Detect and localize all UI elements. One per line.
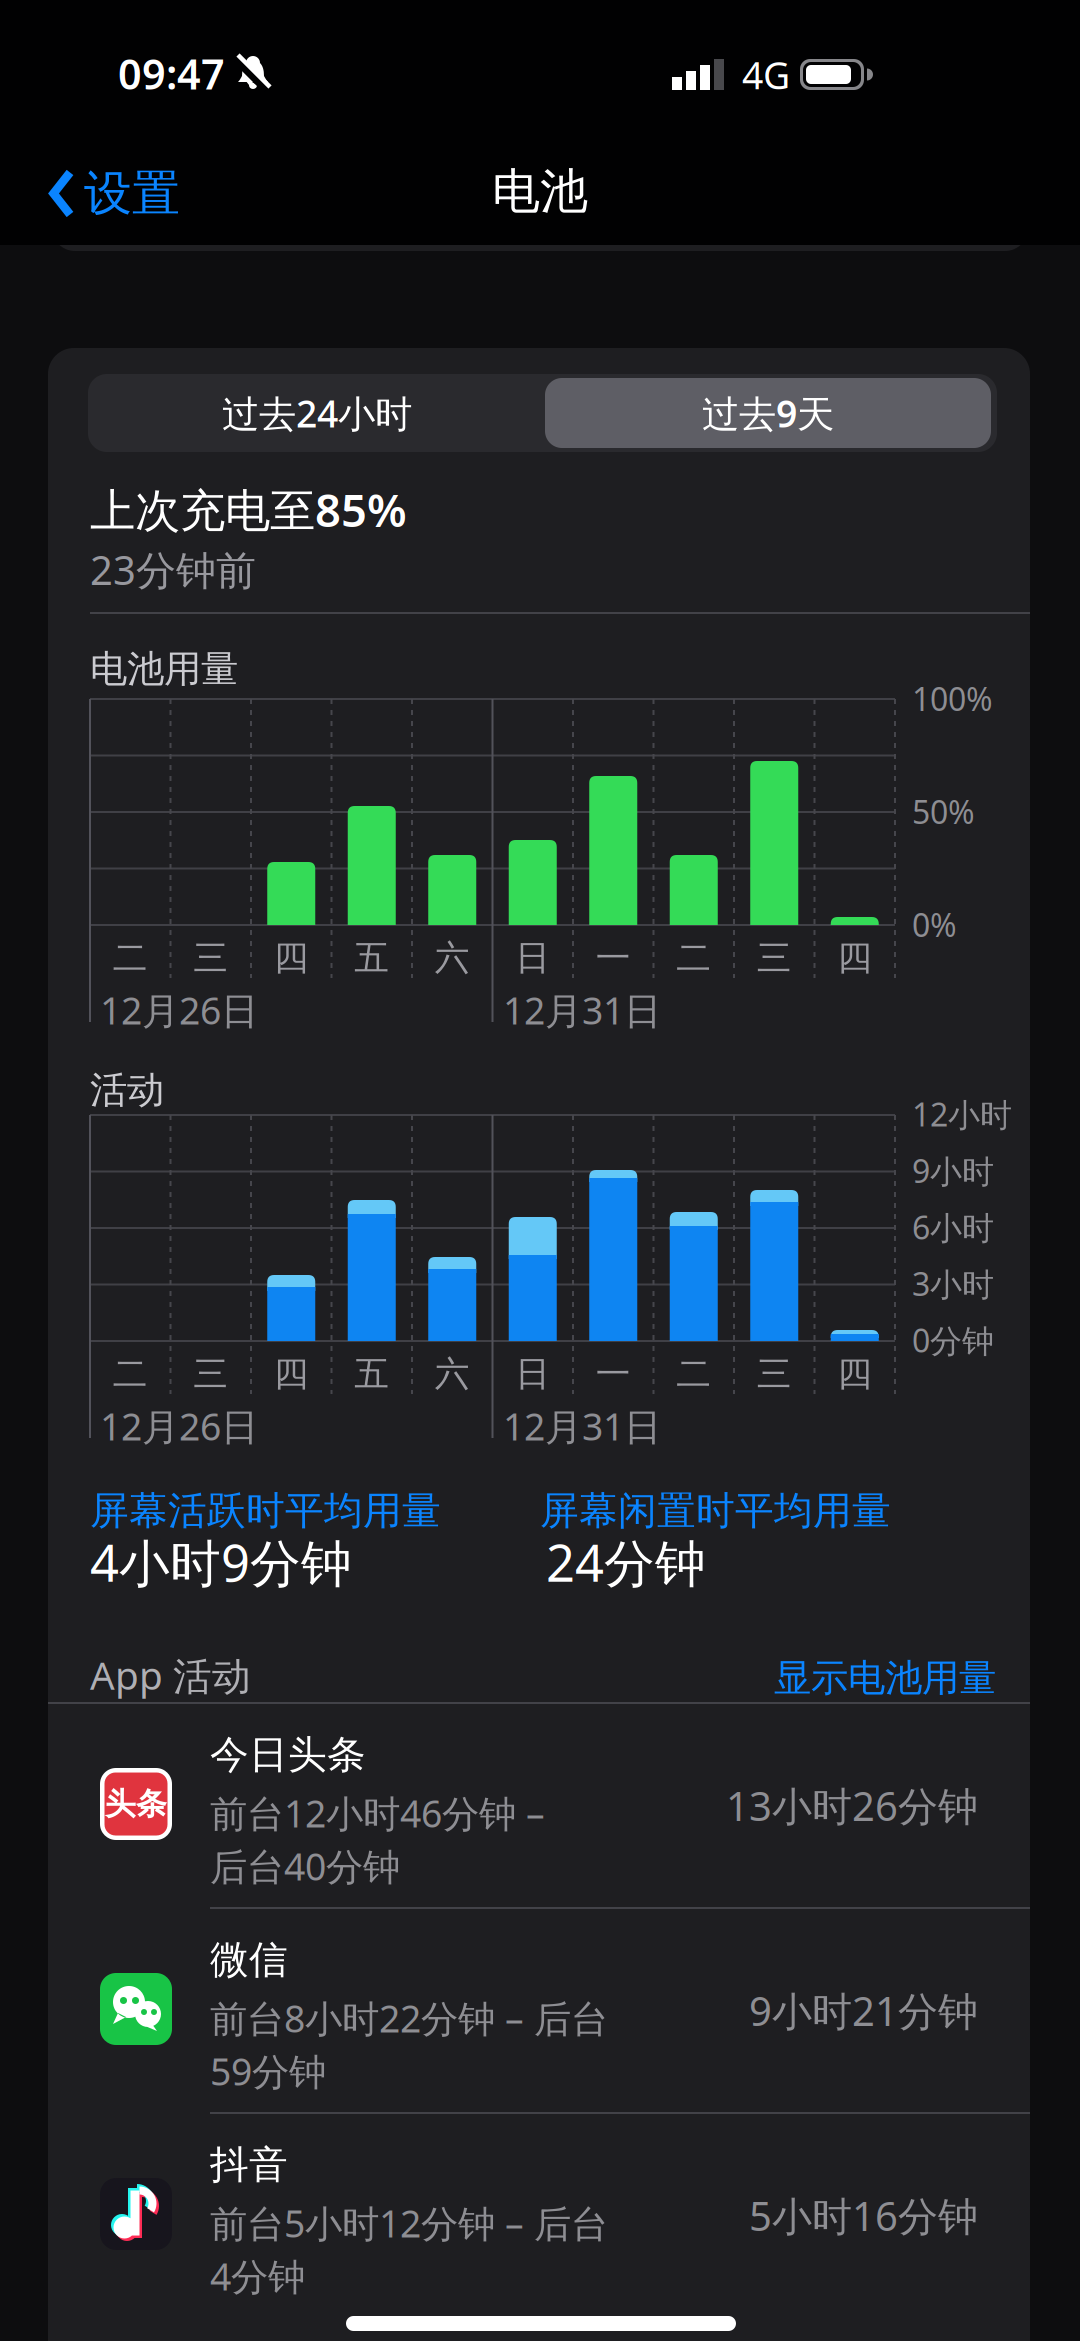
staticText: 显示电池用量	[774, 1655, 996, 1701]
staticText: 四	[837, 937, 872, 979]
staticText: 前台12小时46分钟 –	[210, 1788, 545, 1838]
staticText: 一	[596, 1353, 631, 1395]
staticText: 六	[435, 1353, 470, 1395]
staticText: 五	[354, 1353, 389, 1395]
staticText: 过去9天	[702, 388, 834, 438]
staticText: 0分钟	[912, 1319, 994, 1361]
staticText: 12月31日	[503, 985, 661, 1035]
staticText: 四	[837, 1353, 872, 1395]
staticText: 100%	[912, 677, 993, 720]
staticText: 12小时	[912, 1093, 1012, 1135]
staticText: 三	[757, 1353, 792, 1395]
staticText: 后台40分钟	[210, 1841, 400, 1891]
staticText: 设置	[84, 164, 180, 223]
staticText: 活动	[90, 1067, 164, 1113]
staticText: 4G	[742, 50, 790, 100]
staticText: 微信	[210, 1936, 288, 1984]
staticText: 24分钟	[546, 1528, 706, 1596]
staticText: 59分钟	[210, 2046, 326, 2096]
staticText: 四	[274, 937, 309, 979]
staticText: 4小时9分钟	[90, 1528, 352, 1596]
staticText: 12月26日	[100, 985, 258, 1035]
staticText: 6小时	[912, 1206, 994, 1248]
staticText: 过去24小时	[222, 388, 412, 438]
staticText: 六	[435, 937, 470, 979]
staticText: 二	[676, 1353, 711, 1395]
staticText: 电池用量	[90, 646, 238, 692]
staticText: 抖音	[210, 2141, 288, 2189]
staticText: 一	[596, 937, 631, 979]
button[interactable]: 返回设置	[50, 164, 180, 223]
staticText: 50%	[912, 790, 975, 833]
staticText: 前台5小时12分钟 – 后台	[210, 2198, 608, 2248]
staticText: 日	[515, 937, 550, 979]
staticText: 9小时	[912, 1149, 994, 1192]
button[interactable]: 抖音	[48, 2112, 1030, 2317]
staticText: 五	[354, 937, 389, 979]
staticText: 9小时21分钟	[749, 1984, 978, 2037]
staticText: 3小时	[912, 1262, 994, 1305]
staticText: 三	[193, 937, 228, 979]
staticText: 23分钟前	[90, 543, 256, 596]
button[interactable]: 显示电池用量	[696, 1655, 996, 1701]
staticText: 上次充电至85%	[90, 479, 407, 539]
staticText: 三	[193, 1353, 228, 1395]
staticText: 头条	[105, 1785, 167, 1823]
staticText: 0%	[912, 903, 957, 946]
staticText: 电池	[492, 162, 588, 221]
staticText: 13小时26分钟	[726, 1779, 978, 1832]
button[interactable]: 过去24小时	[92, 374, 542, 452]
staticText: 三	[757, 937, 792, 979]
staticText: App 活动	[90, 1649, 251, 1701]
staticText: 屏幕活跃时平均用量	[90, 1487, 441, 1535]
staticText: 5小时16分钟	[749, 2189, 978, 2242]
staticText: 09:47	[118, 46, 225, 101]
staticText: 二	[113, 937, 148, 979]
staticText: 前台8小时22分钟 – 后台	[210, 1993, 608, 2043]
staticText: 二	[113, 1353, 148, 1395]
staticText: 12月26日	[100, 1401, 258, 1451]
staticText: 4分钟	[210, 2251, 305, 2301]
button[interactable]: 过去9天	[545, 378, 991, 448]
staticText: 今日头条	[210, 1731, 366, 1779]
staticText: 屏幕闲置时平均用量	[540, 1487, 891, 1535]
button[interactable]: 头条	[48, 1702, 1030, 1907]
staticText: 日	[515, 1353, 550, 1395]
button[interactable]: 微信	[48, 1907, 1030, 2112]
staticText: 12月31日	[503, 1401, 661, 1451]
staticText: 四	[274, 1353, 309, 1395]
staticText: 二	[676, 937, 711, 979]
